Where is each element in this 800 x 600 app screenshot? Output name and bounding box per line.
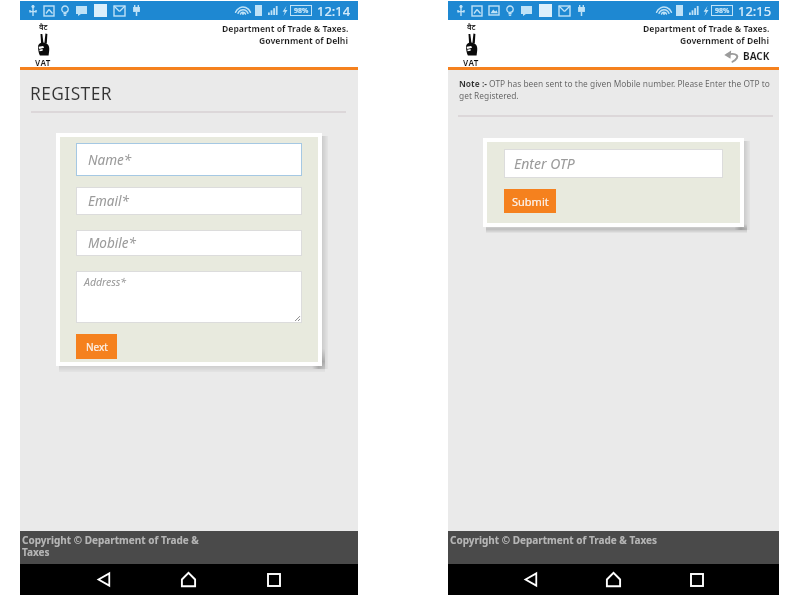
staticText: वैट (39, 22, 48, 32)
button[interactable]: Home (572, 564, 655, 595)
staticText: Copyright © Department of Trade & Taxes (450, 533, 710, 547)
staticText: Email* (88, 192, 129, 210)
button[interactable]: Email* (76, 187, 302, 215)
staticText: 98% (715, 6, 730, 16)
staticText: Department of Trade & Taxes. (643, 23, 770, 35)
staticText: वैट (467, 22, 476, 32)
staticText: 12:14 (317, 2, 351, 20)
other: Back (724, 50, 741, 62)
button[interactable]: Back (61, 564, 146, 595)
staticText: REGISTER (30, 81, 112, 105)
button[interactable]: Address* (76, 271, 302, 323)
staticText: Note :- OTP has been sent to the given M… (459, 78, 773, 102)
staticText: Mobile* (88, 234, 136, 252)
button[interactable]: Enter OTP (504, 149, 723, 178)
staticText: Enter OTP (514, 154, 575, 173)
staticText: 12:15 (738, 2, 772, 20)
button[interactable]: Submit (504, 189, 556, 213)
staticText: Government of Delhi (680, 35, 770, 47)
staticText: Name* (88, 151, 132, 169)
staticText: Address* (84, 275, 127, 289)
staticText: Government of Delhi (259, 35, 349, 47)
button[interactable]: Home (146, 564, 231, 595)
button[interactable]: Back (724, 49, 770, 63)
button[interactable]: Recents (655, 564, 738, 595)
button[interactable]: Recents (231, 564, 316, 595)
staticText: VAT (35, 57, 51, 68)
staticText: VAT (463, 57, 479, 68)
staticText: 98% (294, 6, 309, 16)
staticText: Submit (512, 194, 549, 209)
button[interactable]: Next (76, 334, 117, 359)
staticText: Copyright © Department of Trade & Taxes (22, 533, 207, 559)
button[interactable]: Mobile* (76, 230, 302, 256)
button[interactable]: Name* (76, 143, 302, 176)
staticText: Next (86, 340, 108, 354)
button[interactable]: Back (489, 564, 572, 595)
staticText: BACK (743, 49, 770, 63)
staticText: Department of Trade & Taxes. (222, 23, 349, 35)
